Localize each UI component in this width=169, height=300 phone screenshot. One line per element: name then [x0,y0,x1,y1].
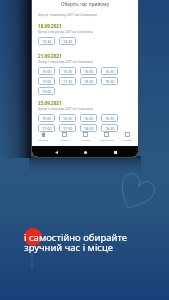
staticText: 21.09.2021 [38,53,62,59]
button[interactable]: Home [79,146,91,157]
button[interactable]: 15:30 [59,67,76,75]
staticText: Центр і стаціонар 24/7 на Соломянці [38,107,94,111]
button[interactable]: Back [50,146,62,157]
staticText: 16:00 [84,69,94,74]
button[interactable]: 17:00 [38,77,55,85]
staticText: Центр і стаціонар 24/7 на Соломянці [38,30,94,34]
staticText: 17:00 [42,79,52,84]
button[interactable]: Recents [109,146,121,157]
button[interactable]: 18:00 [80,124,97,132]
staticText: 17:30 [63,126,73,131]
button[interactable]: 17:30 [59,77,76,85]
staticText: 15:00 [42,69,52,74]
staticText: 18.09.2021 [38,23,62,29]
staticText: і самостійно обирайте [24,231,127,244]
button[interactable]: 17:00 [38,124,55,132]
button[interactable]: 15:30 [59,114,76,122]
button[interactable]: Профіль [117,132,138,141]
button[interactable]: Документи [96,132,117,141]
staticText: 12:30 [42,39,52,44]
staticText: 16:00 [84,116,94,121]
button[interactable]: 12:30 [38,37,55,45]
staticText: 18:00 [84,79,94,84]
button[interactable]: 18:30 [101,77,118,85]
button[interactable]: 16:30 [101,114,118,122]
button[interactable]: Записи [54,132,75,141]
staticText: 18:30 [105,79,115,84]
button[interactable]: 15:00 [38,114,55,122]
button[interactable]: Головна [32,132,54,141]
staticText: 17:30 [63,79,73,84]
staticText: 18:30 [105,126,115,131]
staticText: 17:00 [42,126,52,131]
staticText: 23.09.2021 [38,100,62,106]
staticText: 18:00 [84,126,94,131]
button[interactable]: 15:00 [38,67,55,75]
staticText: Документи [100,138,114,141]
staticText: Центр і стаціонар 24/7 на Соломянці [38,60,94,64]
staticText: 15:30 [63,116,73,121]
staticText: Профіль [122,138,133,141]
staticText: 16:30 [105,69,115,74]
staticText: Центр і стаціонар 24/7 на Соломянці [38,12,97,16]
button[interactable]: 17:30 [59,124,76,132]
button[interactable]: 18:30 [101,124,118,132]
staticText: 19:00 [42,89,52,94]
button[interactable]: 14:30 [59,37,76,45]
staticText: Записи [60,138,69,141]
staticText: Клініки [81,138,90,141]
button[interactable]: 16:00 [80,67,97,75]
staticText: Головна [38,138,48,141]
staticText: 15:00 [42,116,52,121]
button[interactable]: 18:00 [80,77,97,85]
staticText: 15:30 [63,69,73,74]
staticText: 14:30 [63,39,73,44]
button[interactable]: 16:30 [101,67,118,75]
button[interactable]: Клініки [75,132,96,141]
button[interactable]: 19:00 [38,87,55,95]
staticText: 16:30 [105,116,115,121]
button[interactable]: 16:00 [80,114,97,122]
staticText: Оберіть час прийому [61,1,110,7]
staticText: зручний час і місце [24,241,114,254]
